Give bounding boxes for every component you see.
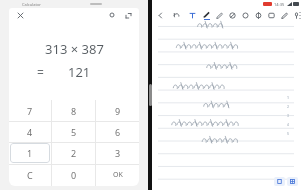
button[interactable]: Minimize to bubble xyxy=(107,10,117,20)
button[interactable]: 4 xyxy=(9,121,51,142)
staticText: 3 xyxy=(287,113,290,118)
button[interactable]: Text tool xyxy=(188,11,197,20)
button[interactable]: 1 xyxy=(10,143,50,163)
button[interactable]: Eraser xyxy=(228,11,237,20)
button[interactable]: 8 xyxy=(52,100,95,121)
button[interactable]: Lasso select xyxy=(241,11,250,20)
staticText: 1 xyxy=(27,147,33,159)
staticText: 4 xyxy=(27,126,33,138)
button[interactable]: Toggle ruling xyxy=(287,177,298,186)
button[interactable]: 2 xyxy=(52,142,95,164)
button[interactable]: 7 xyxy=(9,100,51,121)
staticText: 1 xyxy=(287,95,290,100)
button[interactable]: 3 xyxy=(96,142,139,164)
staticText: 2 xyxy=(71,147,77,159)
staticText: Calculator xyxy=(22,2,41,7)
button[interactable]: 0 xyxy=(52,164,95,186)
button[interactable]: Undo xyxy=(172,11,181,20)
staticText: 313 × 387 xyxy=(45,40,104,58)
button[interactable]: Back xyxy=(156,11,165,20)
staticText: 7 xyxy=(27,105,33,117)
staticText: 6 xyxy=(115,126,121,138)
staticText: 5 xyxy=(71,126,77,138)
staticText: 121 xyxy=(68,63,91,81)
staticText: 2 xyxy=(287,104,290,109)
button[interactable]: Shapes xyxy=(254,11,263,20)
staticText: 0 xyxy=(71,169,77,181)
button[interactable]: 5 xyxy=(52,121,95,142)
staticText: 4 xyxy=(287,122,290,127)
button[interactable]: Add page xyxy=(274,177,285,186)
staticText: 5 xyxy=(287,131,290,136)
button[interactable]: 6 xyxy=(96,121,139,142)
staticText: 14:35 xyxy=(274,2,285,7)
staticText: OK xyxy=(113,170,123,180)
button[interactable]: Highlighter xyxy=(215,11,224,20)
button[interactable]: Pen xyxy=(202,10,211,19)
button[interactable]: Close xyxy=(15,10,25,20)
button[interactable]: Maximize xyxy=(123,10,133,20)
staticText: 8 xyxy=(71,105,77,117)
button[interactable]: Attach xyxy=(280,11,289,20)
button[interactable]: OK xyxy=(96,164,139,186)
staticText: 9 xyxy=(115,105,121,117)
button[interactable]: 9 xyxy=(96,100,139,121)
staticText: C xyxy=(27,169,33,181)
button[interactable]: Insert image xyxy=(267,11,276,20)
button[interactable]: C xyxy=(9,164,51,186)
staticText: = xyxy=(37,64,44,80)
staticText: 3 xyxy=(115,147,121,159)
button[interactable]: Voice note xyxy=(293,11,300,20)
